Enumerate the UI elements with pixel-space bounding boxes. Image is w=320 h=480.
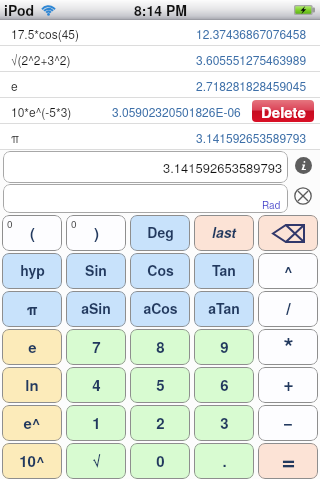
button[interactable]: π	[2, 291, 62, 327]
button[interactable]: e	[0, 72, 320, 98]
button[interactable]: √	[66, 443, 126, 479]
staticText: 8	[156, 336, 165, 357]
staticText: 10^	[19, 450, 45, 471]
staticText: *	[283, 329, 294, 364]
staticText: 3.05902320501826E-06	[112, 103, 241, 120]
staticText: 7	[92, 336, 101, 357]
staticText: ln	[25, 374, 39, 395]
button[interactable]: 7	[66, 329, 126, 365]
staticText: 3.605551275463989	[196, 51, 307, 68]
staticText: 17.5*cos(45)	[11, 25, 80, 42]
button[interactable]: 4	[66, 367, 126, 403]
staticText: aSin	[81, 298, 111, 318]
button[interactable]: 3.141592653589793	[3, 151, 288, 183]
staticText: 2.718281828459045	[196, 77, 307, 94]
staticText: π	[11, 129, 20, 146]
other: Backspace	[258, 215, 318, 251]
button[interactable]: 5	[130, 367, 190, 403]
button[interactable]: *	[258, 329, 318, 365]
staticText: aTan	[208, 298, 240, 318]
button[interactable]: 3	[194, 405, 254, 441]
staticText: −	[283, 410, 293, 434]
staticText: Tan	[212, 260, 236, 280]
button[interactable]: Info	[295, 157, 312, 174]
button[interactable]: Tan	[194, 253, 254, 289]
button[interactable]: )	[66, 215, 126, 251]
button[interactable]: aSin	[66, 291, 126, 327]
staticText: 9	[220, 336, 229, 357]
button[interactable]: Clear	[294, 187, 312, 205]
button[interactable]: e^	[2, 405, 62, 441]
button[interactable]: 10*e^(-5*3)	[0, 98, 320, 124]
button[interactable]: ln	[2, 367, 62, 403]
staticText: Delete	[261, 101, 306, 122]
button[interactable]: /	[258, 291, 318, 327]
button[interactable]: 0	[130, 443, 190, 479]
staticText: last	[212, 222, 236, 242]
button[interactable]: Sin	[66, 253, 126, 289]
button[interactable]: e	[2, 329, 62, 365]
staticText: 0	[7, 217, 13, 231]
button[interactable]: aTan	[194, 291, 254, 327]
staticText: 0	[156, 450, 165, 471]
button[interactable]: aCos	[130, 291, 190, 327]
button[interactable]: .	[194, 443, 254, 479]
button[interactable]: ^	[258, 253, 318, 289]
staticText: +	[283, 371, 294, 397]
button[interactable]: (	[2, 215, 62, 251]
button[interactable]: +	[258, 367, 318, 403]
staticText: 5	[156, 374, 165, 395]
button[interactable]: 8	[130, 329, 190, 365]
staticText: /	[286, 297, 291, 320]
button[interactable]: hyp	[2, 253, 62, 289]
button[interactable]: Delete	[252, 100, 314, 122]
staticText: Sin	[85, 260, 107, 280]
button[interactable]: 2	[130, 405, 190, 441]
button[interactable]: 6	[194, 367, 254, 403]
button[interactable]: last	[194, 215, 254, 251]
staticText: hyp	[20, 260, 45, 280]
button[interactable]: −	[258, 405, 318, 441]
staticText: π	[26, 298, 38, 319]
staticText: 2	[156, 412, 165, 433]
button[interactable]: Deg	[130, 215, 190, 251]
button[interactable]: π	[0, 124, 320, 150]
staticText: )	[94, 222, 99, 243]
button[interactable]: √(2^2+3^2)	[0, 46, 320, 72]
staticText: Deg	[147, 222, 174, 242]
staticText: 10*e^(-5*3)	[11, 103, 72, 120]
staticText: e	[11, 77, 18, 94]
staticText: 3.141592653589793	[196, 129, 307, 146]
staticText: 1	[92, 412, 101, 433]
button[interactable]: Cos	[130, 253, 190, 289]
button[interactable]: 17.5*cos(45)	[0, 20, 320, 46]
staticText: Rad	[262, 198, 281, 212]
staticText: 3	[220, 412, 229, 433]
staticText: 0	[71, 217, 77, 231]
staticText: 8:14 PM	[134, 0, 187, 20]
staticText: 4	[92, 374, 101, 395]
staticText: √	[92, 450, 101, 471]
button[interactable]: Backspace	[258, 215, 318, 251]
staticText: =	[281, 443, 296, 477]
staticText: 12.37436867076458	[196, 25, 307, 42]
button[interactable]: 10^	[2, 443, 62, 479]
staticText: .	[222, 450, 227, 471]
staticText: ^	[284, 260, 293, 281]
button[interactable]: Rad	[3, 184, 288, 213]
staticText: Cos	[147, 260, 174, 280]
button[interactable]: 1	[66, 405, 126, 441]
staticText: iPod	[4, 0, 35, 20]
staticText: 3.141592653589793	[163, 158, 283, 177]
staticText: √(2^2+3^2)	[11, 51, 71, 68]
staticText: (	[30, 222, 35, 243]
button[interactable]: 9	[194, 329, 254, 365]
staticText: e	[28, 336, 37, 357]
button[interactable]: =	[258, 443, 318, 479]
staticText: 6	[220, 374, 229, 395]
staticText: e^	[23, 412, 41, 433]
staticText: aCos	[143, 298, 178, 318]
